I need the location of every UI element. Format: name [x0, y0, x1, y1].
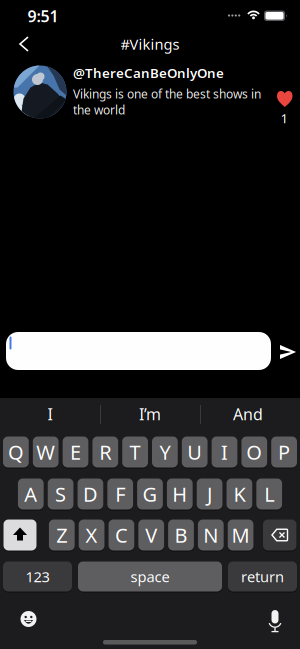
staticText: D	[83, 481, 98, 507]
button[interactable]: Emoji	[20, 611, 36, 627]
button[interactable]: I’m	[102, 402, 198, 426]
button[interactable]: K	[226, 478, 252, 510]
button[interactable]: N	[198, 519, 224, 551]
staticText: Q	[8, 439, 24, 465]
staticText: M	[232, 522, 250, 548]
staticText: Y	[159, 439, 170, 465]
staticText: space	[130, 567, 169, 586]
button[interactable]: Delete	[263, 519, 296, 551]
button[interactable]: F	[107, 478, 133, 510]
staticText: N	[203, 522, 218, 548]
button[interactable]: Shift	[3, 519, 36, 551]
staticText: L	[264, 481, 274, 507]
staticText: A	[24, 481, 37, 507]
staticText: G	[142, 481, 157, 507]
button[interactable]: T	[122, 436, 148, 468]
staticText: C	[115, 522, 128, 548]
button[interactable]: space	[78, 561, 222, 592]
button[interactable]: O	[241, 436, 267, 468]
staticText: 9:51	[27, 5, 58, 27]
staticText: I’m	[139, 403, 161, 425]
staticText: And	[233, 403, 263, 425]
button[interactable]: Z	[49, 519, 75, 551]
button[interactable]: Send	[280, 345, 296, 359]
button[interactable]: Y	[152, 436, 178, 468]
button[interactable]: X	[79, 519, 104, 551]
button[interactable]: Back	[10, 32, 44, 56]
button[interactable]: C	[108, 519, 134, 551]
staticText: I	[221, 439, 228, 465]
staticText: #Vikings	[120, 34, 179, 54]
button[interactable]: B	[168, 519, 194, 551]
staticText: X	[86, 522, 98, 548]
staticText: P	[278, 439, 290, 465]
button[interactable]: J	[197, 478, 222, 510]
button[interactable]: R	[92, 436, 118, 468]
staticText: 1	[280, 109, 288, 127]
staticText: F	[115, 481, 125, 507]
staticText: S	[55, 481, 66, 507]
staticText: 123	[25, 567, 49, 586]
button[interactable]: return	[228, 561, 297, 592]
staticText: return	[241, 567, 284, 586]
button[interactable]: V	[138, 519, 164, 551]
staticText: K	[233, 481, 245, 507]
staticText: Z	[56, 522, 67, 548]
button[interactable]: W	[33, 436, 59, 468]
button[interactable]: S	[48, 478, 73, 510]
button[interactable]: M	[228, 519, 253, 551]
button[interactable]: L	[256, 478, 282, 510]
button[interactable]: 123	[3, 561, 72, 592]
staticText: O	[246, 439, 262, 465]
staticText: R	[99, 439, 111, 465]
staticText: @ThereCanBeOnlyOne	[73, 64, 224, 82]
staticText: J	[207, 481, 212, 507]
staticText: B	[174, 522, 187, 548]
staticText: W	[36, 439, 55, 465]
button[interactable]: I	[2, 402, 98, 426]
button[interactable]: G	[137, 478, 163, 510]
staticText: Vikings is one of the best shows in the …	[73, 86, 261, 118]
staticText: H	[172, 481, 187, 507]
staticText: T	[130, 439, 141, 465]
button[interactable]: Dictate	[267, 610, 283, 633]
staticText: I	[47, 403, 52, 425]
button[interactable]: E	[63, 436, 88, 468]
button[interactable]: And	[200, 402, 296, 426]
button[interactable]: H	[167, 478, 193, 510]
button[interactable]: A	[18, 478, 44, 510]
staticText: E	[70, 439, 81, 465]
button[interactable]: P	[271, 436, 297, 468]
button[interactable]: D	[77, 478, 103, 510]
button[interactable]: Like	[276, 91, 292, 124]
staticText: V	[145, 522, 157, 548]
button[interactable]: U	[182, 436, 208, 468]
button[interactable]: I	[212, 436, 237, 468]
button[interactable]: Q	[3, 436, 29, 468]
staticText: U	[187, 439, 202, 465]
